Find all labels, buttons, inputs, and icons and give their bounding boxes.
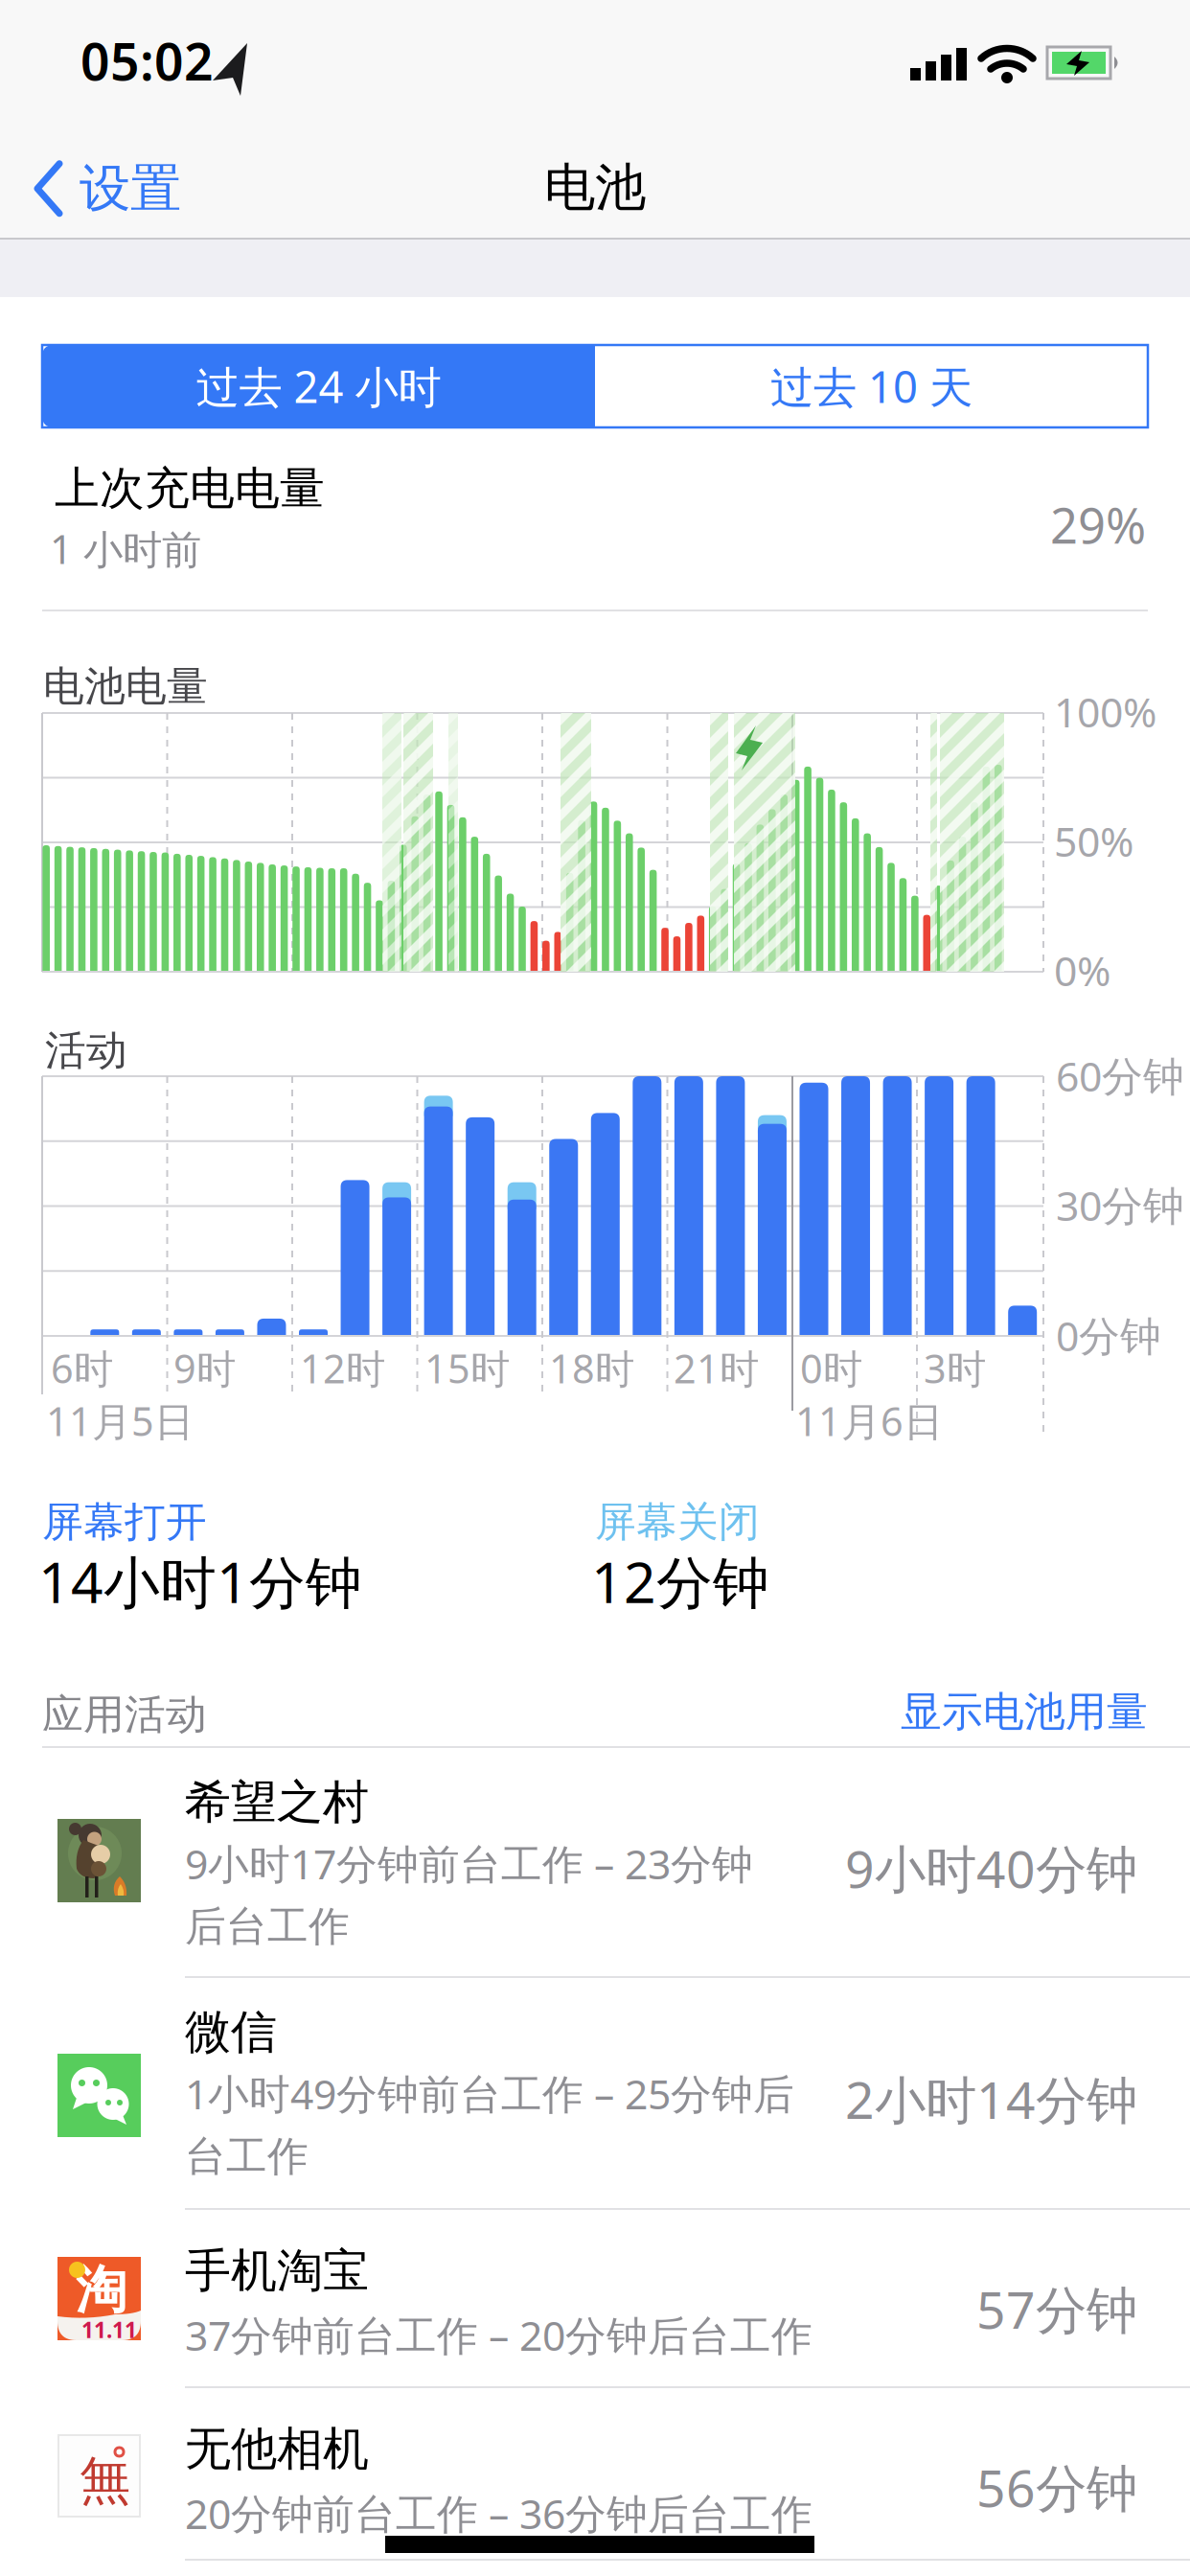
staticText: 电池 bbox=[544, 156, 646, 219]
staticText: 57分钟 bbox=[976, 2275, 1137, 2343]
staticText: 上次充电电量 bbox=[55, 461, 325, 516]
staticText: 0分钟 bbox=[1056, 1308, 1161, 1362]
staticText: 应用活动 bbox=[42, 1690, 207, 1740]
staticText: 手机淘宝 bbox=[185, 2242, 369, 2299]
button[interactable]: 设置 bbox=[34, 157, 181, 220]
button[interactable]: 过去 24 小时 bbox=[42, 345, 595, 427]
staticText: 活动 bbox=[45, 1025, 127, 1076]
staticText: 电池电量 bbox=[43, 661, 208, 711]
staticText: 56分钟 bbox=[976, 2453, 1137, 2521]
staticText: 18时 bbox=[549, 1342, 634, 1394]
staticText: 微信 bbox=[185, 2004, 277, 2060]
staticText: 过去 10 天 bbox=[770, 357, 973, 415]
button[interactable]: 希望之村 bbox=[0, 1747, 1190, 1978]
staticText: 设置 bbox=[80, 157, 181, 220]
staticText: 0时 bbox=[800, 1342, 862, 1394]
staticText: 6时 bbox=[51, 1342, 113, 1394]
button[interactable]: 显示电池用量 bbox=[669, 1687, 1148, 1737]
staticText: 淘 bbox=[76, 2259, 126, 2322]
staticText: 0% bbox=[1054, 943, 1110, 997]
staticText: 9小时17分钟前台工作 – 23分钟 bbox=[185, 1836, 753, 1891]
staticText: 15时 bbox=[424, 1342, 510, 1394]
staticText: 9时 bbox=[173, 1342, 236, 1394]
staticText: 显示电池用量 bbox=[901, 1687, 1148, 1737]
staticText: 无他相机 bbox=[185, 2421, 369, 2477]
staticText: 60分钟 bbox=[1056, 1048, 1184, 1103]
staticText: 希望之村 bbox=[185, 1774, 369, 1830]
staticText: 21时 bbox=[674, 1342, 759, 1394]
staticText: 屏幕关闭 bbox=[595, 1497, 760, 1547]
staticText: 20分钟前台工作 – 36分钟后台工作 bbox=[185, 2486, 812, 2540]
button[interactable]: 微信 bbox=[0, 1977, 1190, 2208]
button[interactable]: 無 bbox=[0, 2387, 1190, 2564]
staticText: 台工作 bbox=[185, 2131, 309, 2182]
staticText: 3时 bbox=[924, 1342, 986, 1394]
staticText: 9小时40分钟 bbox=[845, 1834, 1137, 1902]
staticText: 12分钟 bbox=[591, 1544, 769, 1619]
staticText: 11月6日 bbox=[795, 1394, 943, 1447]
staticText: 屏幕打开 bbox=[42, 1497, 207, 1547]
staticText: 37分钟前台工作 – 20分钟后台工作 bbox=[185, 2308, 812, 2362]
staticText: 过去 24 小时 bbox=[196, 357, 441, 415]
staticText: 12时 bbox=[300, 1342, 385, 1394]
staticText: 50% bbox=[1054, 814, 1133, 868]
staticText: 11月5日 bbox=[46, 1394, 194, 1447]
staticText: 1小时49分钟前台工作 – 25分钟后 bbox=[185, 2066, 794, 2121]
staticText: 2小时14分钟 bbox=[845, 2065, 1137, 2133]
staticText: 14小时1分钟 bbox=[38, 1544, 362, 1619]
staticText: 100% bbox=[1054, 684, 1156, 739]
staticText: 29% bbox=[1050, 493, 1146, 557]
staticText: 05:02 bbox=[80, 27, 214, 95]
button[interactable]: 淘 bbox=[0, 2209, 1190, 2386]
staticText: 11.11 bbox=[81, 2315, 137, 2344]
staticText: 30分钟 bbox=[1056, 1178, 1184, 1232]
button[interactable]: 过去 10 天 bbox=[595, 345, 1148, 427]
staticText: 1 小时前 bbox=[50, 522, 201, 575]
staticText: 無 bbox=[80, 2449, 130, 2512]
staticText: 后台工作 bbox=[185, 1901, 350, 1952]
